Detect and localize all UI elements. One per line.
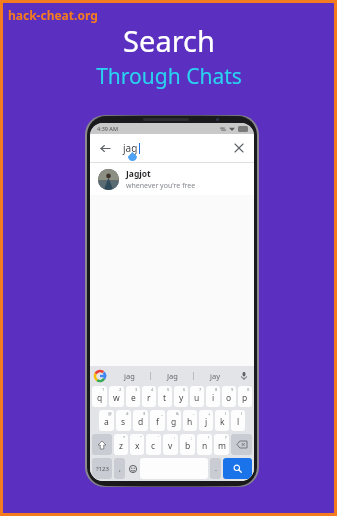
button[interactable]: Voice input <box>236 368 252 384</box>
button[interactable]: _ <box>150 410 165 431</box>
staticText: q <box>97 392 103 404</box>
staticText: 4:39 AM <box>97 125 119 132</box>
staticText: jag <box>124 371 135 381</box>
button[interactable]: + <box>199 410 213 431</box>
staticText: 2 <box>119 387 122 392</box>
staticText: j <box>205 416 208 428</box>
button[interactable]: 8 <box>206 386 220 407</box>
staticText: v <box>168 440 173 452</box>
staticText: 0 <box>247 387 250 392</box>
staticText: jag <box>123 141 138 155</box>
button[interactable]: 1 <box>92 386 107 407</box>
staticText: 3 <box>135 387 138 392</box>
button[interactable]: Google <box>92 368 108 384</box>
button[interactable]: Back <box>97 140 113 156</box>
staticText: p <box>242 392 248 404</box>
button[interactable]: 2 <box>109 386 124 407</box>
button[interactable]: . <box>210 458 221 479</box>
staticText: Jag <box>167 371 178 381</box>
staticText: * <box>123 435 126 440</box>
staticText: # <box>126 411 129 416</box>
button[interactable]: Clear <box>231 140 247 156</box>
button[interactable]: 4 <box>142 386 156 407</box>
staticText: 6 <box>183 387 186 392</box>
button[interactable]: Emoji <box>127 458 138 479</box>
staticText: t <box>163 392 167 404</box>
staticText: Search <box>123 21 215 60</box>
staticText: 4 <box>151 387 154 392</box>
button[interactable]: # <box>116 410 131 431</box>
button[interactable]: : <box>163 434 178 455</box>
button[interactable]: @ <box>99 410 114 431</box>
staticText: - <box>193 411 195 416</box>
button[interactable]: ? <box>214 434 229 455</box>
button[interactable]: ! <box>197 434 212 455</box>
button[interactable]: & <box>167 410 181 431</box>
staticText: Through Chats <box>96 62 242 91</box>
staticText: 5 <box>167 387 170 392</box>
staticText: ! <box>208 435 210 440</box>
staticText: 7 <box>199 387 202 392</box>
staticText: e <box>131 392 136 404</box>
button[interactable]: 3 <box>126 386 140 407</box>
button[interactable]: 0 <box>238 386 252 407</box>
staticText: + <box>208 411 211 416</box>
button[interactable]: " <box>130 434 144 455</box>
staticText: : <box>174 435 176 440</box>
button[interactable]: 5 <box>158 386 172 407</box>
button[interactable]: Jag <box>151 368 193 384</box>
button[interactable]: , <box>114 458 125 479</box>
button[interactable]: jay <box>194 368 236 384</box>
button[interactable]: $ <box>133 410 148 431</box>
staticText: k <box>220 416 225 428</box>
staticText: z <box>119 440 123 452</box>
staticText: n <box>202 440 208 452</box>
button[interactable]: Shift <box>92 434 112 455</box>
staticText: 9 <box>231 387 234 392</box>
button[interactable]: jag <box>108 368 150 384</box>
staticText: l <box>237 416 240 428</box>
staticText: f <box>156 416 159 428</box>
button[interactable]: ) <box>231 410 245 431</box>
staticText: $ <box>143 411 146 416</box>
staticText: ; <box>191 435 193 440</box>
staticText: m <box>218 440 226 452</box>
staticText: o <box>226 392 232 404</box>
staticText: d <box>138 416 144 428</box>
staticText: . <box>215 464 217 474</box>
staticText: i <box>212 392 215 404</box>
button[interactable]: - <box>183 410 197 431</box>
staticText: g <box>171 416 177 428</box>
staticText: @ <box>108 411 112 416</box>
staticText: 8 <box>215 387 218 392</box>
staticText: whenever you're free <box>126 181 196 191</box>
staticText: s <box>121 416 126 428</box>
staticText: hack-cheat.org <box>8 7 98 23</box>
button[interactable]: 6 <box>174 386 188 407</box>
button[interactable]: Jagjot <box>90 163 254 195</box>
staticText: ? <box>225 435 227 440</box>
button[interactable]: * <box>114 434 128 455</box>
staticText: ( <box>225 411 227 416</box>
staticText: _ <box>161 411 163 416</box>
staticText: a <box>104 416 109 428</box>
staticText: x <box>135 440 140 452</box>
staticText: jay <box>210 371 220 381</box>
staticText: & <box>176 411 179 416</box>
button[interactable]: Search <box>223 458 252 479</box>
staticText: " <box>140 435 142 440</box>
staticText: w <box>113 392 120 404</box>
staticText: r <box>147 392 151 404</box>
staticText: ?123 <box>96 465 109 473</box>
button[interactable]: ' <box>146 434 161 455</box>
staticText: , <box>119 464 121 474</box>
button[interactable]: 7 <box>190 386 204 407</box>
staticText: ) <box>241 411 243 416</box>
button[interactable]: ; <box>180 434 195 455</box>
button[interactable]: Backspace <box>231 434 252 455</box>
button[interactable]: 9 <box>222 386 236 407</box>
staticText: Jagjot <box>126 168 151 180</box>
button[interactable]: ?123 <box>92 458 112 479</box>
button[interactable]: ( <box>215 410 229 431</box>
